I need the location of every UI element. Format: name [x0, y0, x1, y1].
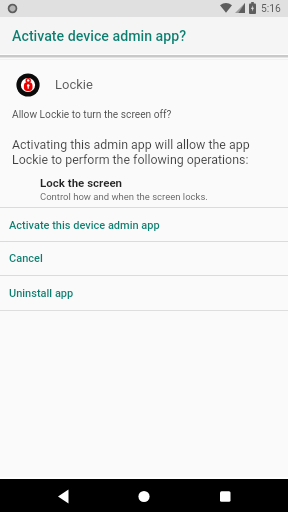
staticText: Activate device admin app?: [12, 28, 187, 45]
button[interactable]: Uninstall app: [0, 277, 288, 310]
button[interactable]: Activate this device admin app: [0, 208, 288, 242]
staticText: Activating this admin app will allow the…: [12, 137, 250, 167]
staticText: Uninstall app: [9, 287, 74, 300]
button[interactable]: [48, 480, 80, 512]
button[interactable]: Cancel: [0, 242, 288, 275]
staticText: Activate this device admin app: [9, 219, 160, 232]
staticText: 5:16: [261, 2, 281, 14]
button[interactable]: [128, 480, 160, 512]
staticText: Lock the screen: [40, 176, 123, 189]
staticText: Cancel: [9, 252, 43, 265]
button[interactable]: [209, 480, 241, 512]
staticText: Lockie: [55, 77, 93, 92]
staticText: Allow Lockie to turn the screen off?: [12, 109, 172, 121]
staticText: Control how and when the screen locks.: [40, 191, 208, 202]
